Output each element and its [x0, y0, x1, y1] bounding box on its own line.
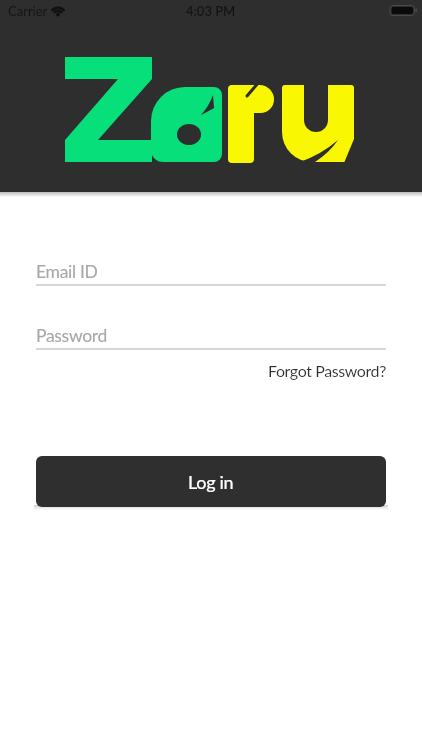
- staticText: 4:03 PM: [186, 3, 236, 19]
- button[interactable]: Password: [36, 314, 386, 350]
- staticText: Email ID: [36, 261, 98, 282]
- button[interactable]: Forgot Password?: [268, 361, 386, 380]
- button[interactable]: Log in: [36, 456, 386, 507]
- staticText: Forgot Password?: [268, 361, 386, 380]
- staticText: Password: [36, 325, 108, 346]
- button[interactable]: Email ID: [36, 250, 386, 286]
- staticText: Carrier: [8, 3, 48, 19]
- staticText: Log in: [188, 471, 234, 493]
